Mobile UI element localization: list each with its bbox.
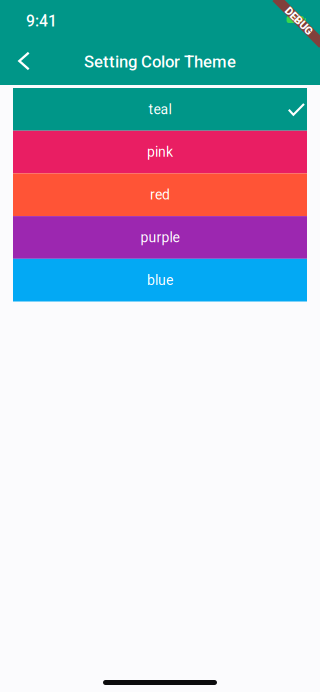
staticText: Setting Color Theme xyxy=(84,52,236,71)
button[interactable]: pink xyxy=(13,131,307,173)
button[interactable]: blue xyxy=(13,259,307,301)
button[interactable]: teal xyxy=(13,88,307,131)
staticText: blue xyxy=(147,272,173,288)
staticText: DEBUG xyxy=(282,14,317,28)
staticText: teal xyxy=(148,101,171,117)
staticText: 9:41 xyxy=(26,12,57,30)
staticText: purple xyxy=(140,229,179,246)
button[interactable]: red xyxy=(13,173,307,216)
staticText: red xyxy=(150,186,170,203)
button[interactable]: purple xyxy=(13,216,307,259)
button[interactable]: Back xyxy=(1,38,47,84)
staticText: pink xyxy=(147,144,173,160)
